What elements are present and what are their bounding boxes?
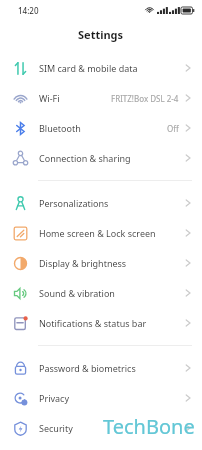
staticText: Sound & vibration xyxy=(39,287,115,299)
button[interactable]: Wi-Fi xyxy=(0,83,202,113)
button[interactable]: Display & brightness xyxy=(0,248,202,278)
staticText: Wi-Fi xyxy=(39,92,60,104)
staticText: Security xyxy=(39,422,73,434)
button[interactable]: Home screen & Lock screen xyxy=(0,218,202,248)
button[interactable]: Privacy xyxy=(0,383,202,413)
button[interactable]: Bluetooth xyxy=(0,113,202,143)
staticText: Home screen & Lock screen xyxy=(39,227,156,239)
button[interactable]: Sound & vibration xyxy=(0,278,202,308)
button[interactable]: Security xyxy=(0,413,202,443)
button[interactable]: Notifications & status bar xyxy=(0,308,202,338)
button[interactable]: Password & biometrics xyxy=(0,353,202,383)
staticText: SIM card & mobile data xyxy=(39,62,138,74)
staticText: Display & brightness xyxy=(39,257,127,269)
staticText: Privacy xyxy=(39,392,70,404)
staticText: Personalizations xyxy=(39,197,109,209)
staticText: Notifications & status bar xyxy=(39,317,147,329)
staticText: FRITZ!Box DSL 2-4 xyxy=(111,93,179,104)
staticText: TechBone xyxy=(103,413,195,440)
button[interactable]: SIM card & mobile data xyxy=(0,53,202,83)
button[interactable]: Connection & sharing xyxy=(0,143,202,173)
staticText: Settings xyxy=(78,27,124,42)
staticText: Off xyxy=(167,123,179,134)
staticText: Password & biometrics xyxy=(39,362,136,374)
button[interactable]: Personalizations xyxy=(0,188,202,218)
staticText: Connection & sharing xyxy=(39,152,131,164)
staticText: Bluetooth xyxy=(39,122,81,134)
staticText: 14:20 xyxy=(18,5,39,16)
